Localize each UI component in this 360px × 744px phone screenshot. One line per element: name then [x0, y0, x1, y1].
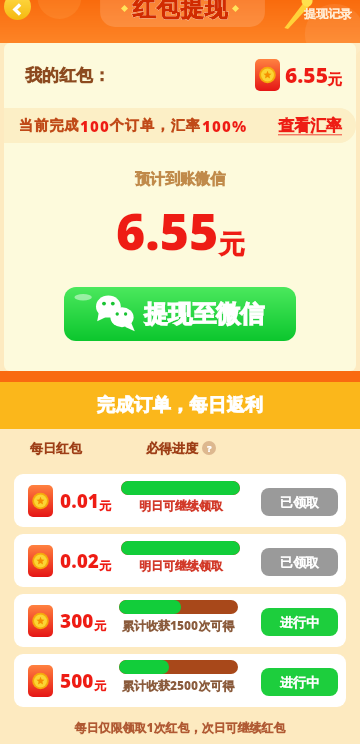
staticText: 每日红包	[30, 440, 82, 456]
staticText: 0.02	[60, 548, 99, 574]
button[interactable]: 已领取	[261, 548, 338, 576]
button[interactable]: 0.02	[14, 534, 346, 587]
button[interactable]: 提现记录	[304, 6, 352, 21]
button[interactable]: 0.01	[14, 474, 346, 527]
staticText: 完成订单，每日返利	[97, 394, 264, 417]
staticText: 提现至微信	[144, 299, 264, 329]
staticText: 6.55	[116, 197, 219, 265]
button[interactable]: Back	[4, 0, 31, 20]
staticText: 元	[94, 618, 106, 633]
staticText: 元	[94, 678, 106, 693]
button[interactable]: 进行中	[261, 668, 338, 696]
staticText: 进行中	[280, 674, 319, 690]
staticText: 累计收获1500次可得	[122, 617, 235, 633]
staticText: 明日可继续领取	[139, 558, 223, 573]
staticText: 进行中	[280, 614, 319, 630]
staticText: 明日可继续领取	[139, 498, 223, 513]
staticText: 预计到账微信	[4, 170, 356, 189]
staticText: 元	[99, 498, 111, 513]
staticText: 100	[80, 116, 110, 136]
staticText: 红包提现	[132, 0, 228, 23]
button[interactable]: 查看汇率	[278, 116, 342, 136]
staticText: 当前完成	[19, 117, 80, 135]
staticText: 500	[60, 668, 94, 694]
staticText: 元	[328, 71, 342, 89]
staticText: 6.55	[285, 61, 328, 90]
staticText: 累计收获2500次可得	[122, 677, 235, 693]
staticText: 已领取	[280, 494, 319, 510]
staticText: 红包提现	[132, 0, 228, 23]
staticText: 每日仅限领取1次红包，次日可继续红包	[0, 719, 360, 735]
staticText: ?	[207, 442, 212, 454]
button[interactable]: 500	[14, 654, 346, 707]
staticText: 个订单，汇率	[110, 117, 202, 135]
staticText: 100%	[202, 116, 248, 136]
staticText: 300	[60, 608, 94, 634]
button[interactable]: Help	[202, 441, 216, 455]
button[interactable]: 300	[14, 594, 346, 647]
staticText: 0.01	[60, 488, 99, 514]
button[interactable]: 进行中	[261, 608, 338, 636]
staticText: 我的红包：	[25, 65, 110, 86]
button[interactable]: 提现至微信	[64, 287, 296, 341]
button[interactable]: 已领取	[261, 488, 338, 516]
staticText: 查看汇率	[278, 116, 342, 136]
staticText: 必得进度	[146, 440, 198, 456]
staticText: 元	[99, 558, 111, 573]
staticText: 提现记录	[304, 6, 352, 21]
staticText: 元	[219, 228, 245, 261]
staticText: 已领取	[280, 554, 319, 570]
